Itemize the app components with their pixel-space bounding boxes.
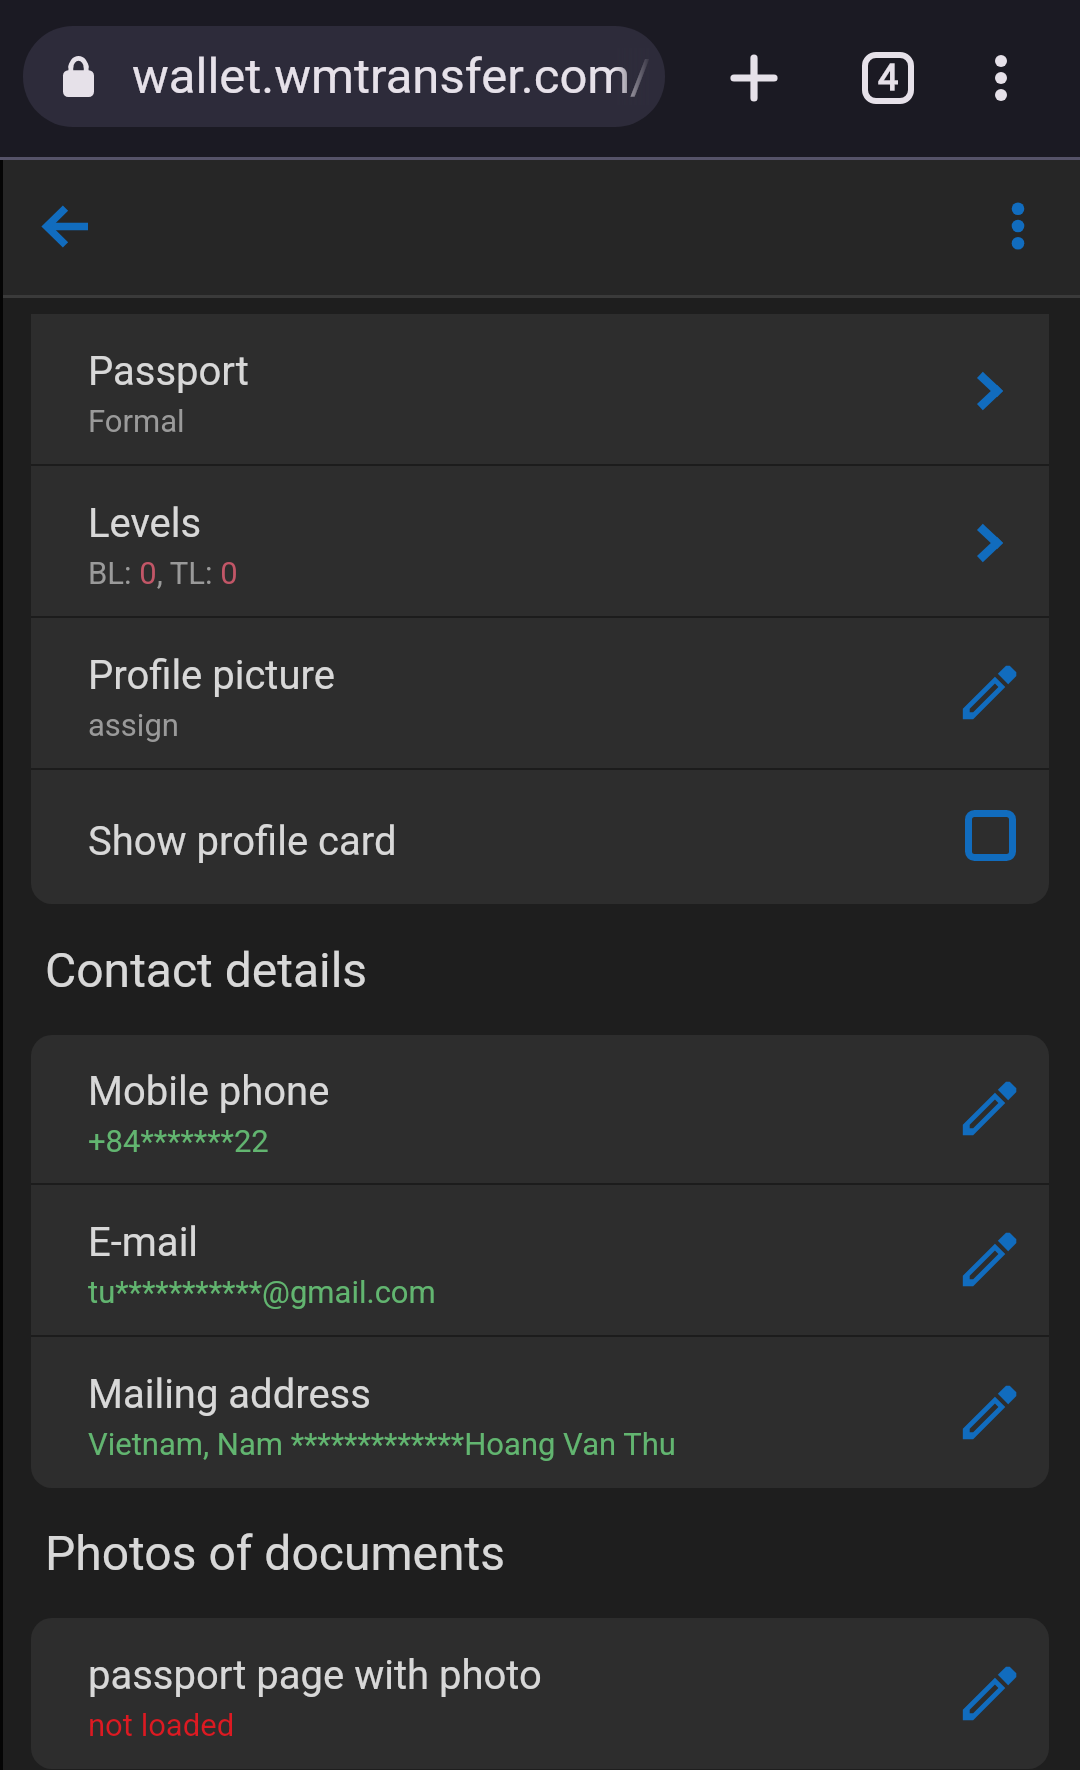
staticText: Mobile phone — [88, 1068, 330, 1115]
staticText: Levels — [88, 500, 202, 547]
staticText: 4 — [878, 57, 899, 99]
button[interactable]: Show profile card — [31, 770, 1049, 904]
button[interactable]: Levels — [31, 466, 1049, 616]
button[interactable]: Tabs — [838, 28, 938, 128]
staticText: Mailing address — [88, 1371, 371, 1418]
staticText: not loaded — [88, 1707, 235, 1743]
button[interactable]: Profile picture — [31, 618, 1049, 768]
staticText: BL: 0, TL: 0 — [88, 555, 238, 591]
staticText: E-mail — [88, 1219, 199, 1266]
staticText: passport page with photo — [88, 1652, 542, 1699]
button[interactable]: Mobile phone — [31, 1035, 1049, 1183]
staticText: tu***********@gmail.com — [88, 1274, 436, 1310]
staticText: Photos of documents — [45, 1525, 505, 1581]
staticText: Formal — [88, 403, 185, 439]
staticText: Show profile card — [88, 818, 397, 865]
staticText: Contact details — [45, 942, 368, 998]
staticText: Passport — [88, 348, 249, 395]
staticText: Vietnam, Nam *************Hoang Van Thu — [88, 1426, 676, 1462]
button[interactable]: passport page with photo — [31, 1618, 1049, 1769]
staticText: +84*******22 — [88, 1123, 269, 1159]
staticText: Profile picture — [88, 652, 335, 699]
staticText: assign — [88, 707, 179, 743]
button[interactable]: Mailing address — [31, 1337, 1049, 1488]
staticText: wallet.wmtransfer.com/ — [132, 48, 651, 105]
button[interactable]: More options — [951, 28, 1051, 128]
button[interactable]: New tab — [704, 28, 804, 128]
button[interactable]: Back — [15, 176, 115, 276]
button[interactable]: More options — [968, 176, 1068, 276]
button[interactable]: wallet.wmtransfer.com/ — [23, 26, 665, 127]
button[interactable]: Passport — [31, 314, 1049, 464]
button[interactable]: E-mail — [31, 1185, 1049, 1335]
